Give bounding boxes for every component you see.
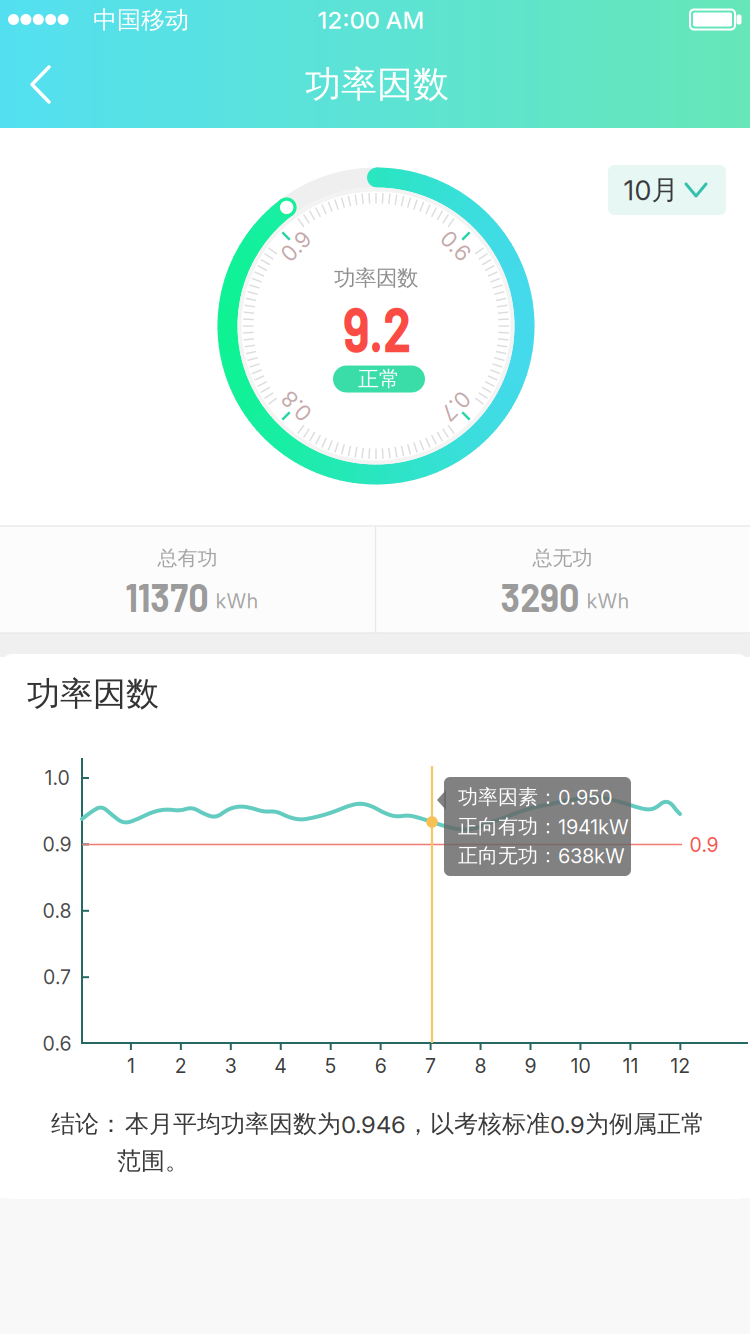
staticText: 0.6 [42,1032,71,1055]
staticText: 本月平均功率因数为0.946，以考核标准0.9为例属正常 [125,1109,705,1139]
staticText: 11370 [120,572,213,620]
staticText: 7 [425,1054,436,1078]
staticText: 总无功 [532,545,592,571]
staticText: 9 [524,1054,536,1078]
staticText: 0.7 [43,965,71,989]
staticText: 正向有功：1941kW [458,814,629,839]
staticText: 中国移动 [93,5,189,35]
staticText: 9.2 [334,289,419,365]
staticText: 0.8 [280,393,313,419]
staticText: 功率因数 [334,264,418,292]
button[interactable]: Back [0,0,80,169]
staticText: kWh [215,589,258,613]
button[interactable]: 10月 [608,165,726,215]
staticText: 正向无功：638kW [458,843,625,868]
staticText: 总有功 [157,545,217,571]
staticText: 正常 [358,366,400,392]
staticText: 12 [670,1054,690,1078]
staticText: 2 [175,1054,187,1078]
staticText: 0.7 [440,393,471,419]
staticText: 功率因素：0.950 [458,784,613,810]
staticText: 11 [622,1054,638,1078]
staticText: 5 [325,1054,337,1078]
staticText: 1.0 [44,766,69,790]
staticText: 10 [570,1054,590,1078]
staticText: 范围。 [117,1146,189,1176]
staticText: 8 [475,1054,487,1078]
staticText: 功率因数 [305,62,449,107]
staticText: 1 [127,1054,135,1078]
staticText: 功率因数 [27,673,159,715]
staticText: 0.9 [689,833,718,857]
staticText: 6 [375,1054,387,1078]
staticText: 10月 [623,173,678,207]
staticText: 结论： [51,1109,123,1139]
staticText: 12:00 AM [317,5,424,34]
staticText: 0.9 [42,833,71,856]
staticText: 3 [225,1054,237,1078]
staticText: 4 [274,1054,287,1078]
staticText: 0.9 [280,233,313,259]
staticText: 3290 [496,572,584,620]
staticText: kWh [586,589,629,613]
staticText: 0.8 [42,899,71,923]
staticText: 0.6 [439,233,472,259]
